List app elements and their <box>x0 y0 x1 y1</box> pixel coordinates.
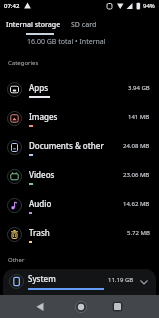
staticText: 5.72 MB <box>127 229 150 237</box>
button[interactable] <box>53 295 106 318</box>
staticText: Categories <box>8 59 39 67</box>
button[interactable]: Audio <box>7 191 150 220</box>
staticText: 94% <box>143 2 155 10</box>
staticText: 16.00 GB total • Internal <box>27 37 106 47</box>
staticText: SD card <box>71 20 97 30</box>
staticText: 23.06 MB <box>123 171 150 179</box>
staticText: Internal storage <box>6 20 61 30</box>
staticText: Audio <box>29 198 52 209</box>
button[interactable]: System <box>9 273 148 290</box>
staticText: Images <box>29 111 58 122</box>
staticText: Trash <box>29 227 50 238</box>
staticText: 24.08 MB <box>123 142 150 150</box>
staticText: Other <box>8 256 25 264</box>
staticText: 14.62 MB <box>123 200 150 208</box>
button[interactable]: Apps <box>7 75 150 104</box>
button[interactable]: Videos <box>7 162 150 191</box>
button[interactable]: Images <box>7 104 150 133</box>
button[interactable] <box>0 295 53 318</box>
button[interactable]: SD card <box>71 20 97 30</box>
staticText: Apps <box>29 82 49 93</box>
staticText: 07:42 <box>4 2 20 10</box>
button[interactable]: Internal storage <box>6 20 61 30</box>
button[interactable]: Documents & other <box>7 133 150 162</box>
staticText: Documents & other <box>29 140 104 151</box>
staticText: 141 MB <box>128 113 150 121</box>
button[interactable]: Trash <box>7 220 150 249</box>
button[interactable] <box>106 295 159 318</box>
staticText: System <box>28 273 56 284</box>
staticText: 11.19 GB <box>108 276 134 284</box>
staticText: Videos <box>29 169 55 180</box>
staticText: 3.94 GB <box>128 84 150 92</box>
